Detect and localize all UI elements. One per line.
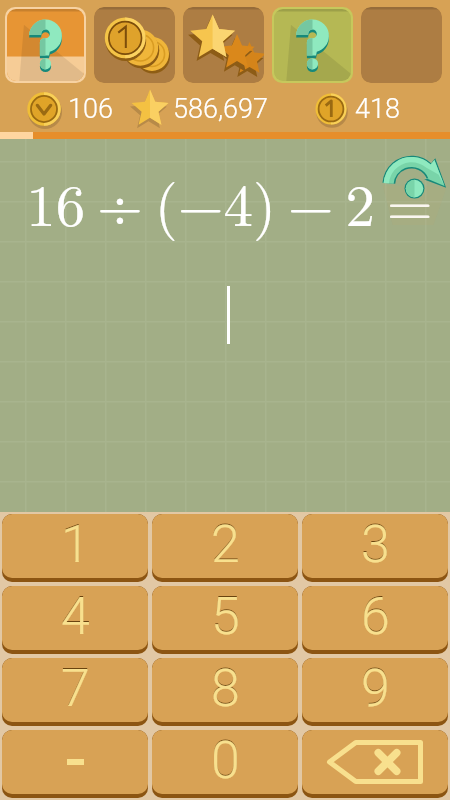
staticText: 0 <box>211 730 240 790</box>
staticText: 16 ÷ (−4) − 2 = <box>26 160 433 244</box>
button[interactable]: Key 6 <box>302 586 448 654</box>
button[interactable]: Item 3 <box>272 7 353 83</box>
button[interactable]: Key 5 <box>152 586 298 654</box>
staticText: 2 <box>211 514 240 574</box>
staticText: 7 <box>61 658 90 718</box>
staticText: 0 <box>211 730 240 791</box>
staticText: 1 <box>61 514 90 575</box>
staticText: 3 <box>361 514 390 575</box>
button[interactable]: Hint <box>5 7 86 83</box>
staticText: 586,697 <box>173 93 269 125</box>
staticText: 4 <box>61 586 90 646</box>
button[interactable]: Key 3 <box>302 514 448 582</box>
staticText: 8 <box>211 658 240 718</box>
button[interactable]: 586,697 <box>131 90 269 128</box>
staticText: 7 <box>61 658 90 719</box>
button[interactable]: Item 1 <box>94 7 175 83</box>
staticText: 4 <box>61 586 90 647</box>
button[interactable]: Item 4 <box>361 7 442 83</box>
staticText: 6 <box>361 586 390 647</box>
button[interactable]: Key 7 <box>2 658 148 726</box>
button[interactable]: Key 4 <box>2 586 148 654</box>
button[interactable]: Key ⌫ <box>302 730 448 798</box>
button[interactable]: Key 9 <box>302 658 448 726</box>
staticText: 5 <box>211 586 240 646</box>
button[interactable]: Key 8 <box>152 658 298 726</box>
button[interactable]: 106 <box>25 90 113 128</box>
button[interactable]: Key 0 <box>152 730 298 798</box>
staticText: 8 <box>211 658 240 719</box>
button[interactable]: 418 <box>312 90 400 128</box>
button[interactable]: Undo <box>370 150 450 245</box>
button[interactable]: Item 2 <box>183 7 264 83</box>
staticText: 6 <box>361 586 390 646</box>
staticText: 2 <box>211 514 240 575</box>
staticText: 9 <box>361 658 390 719</box>
staticText: 3 <box>361 514 390 574</box>
button[interactable]: Key 2 <box>152 514 298 582</box>
staticText: 1 <box>61 514 90 574</box>
staticText: 106 <box>68 93 113 125</box>
button[interactable]: Key - <box>2 730 148 798</box>
staticText: 5 <box>211 586 240 647</box>
staticText: 9 <box>361 658 390 718</box>
button[interactable]: Key 1 <box>2 514 148 582</box>
staticText: 418 <box>355 93 400 125</box>
